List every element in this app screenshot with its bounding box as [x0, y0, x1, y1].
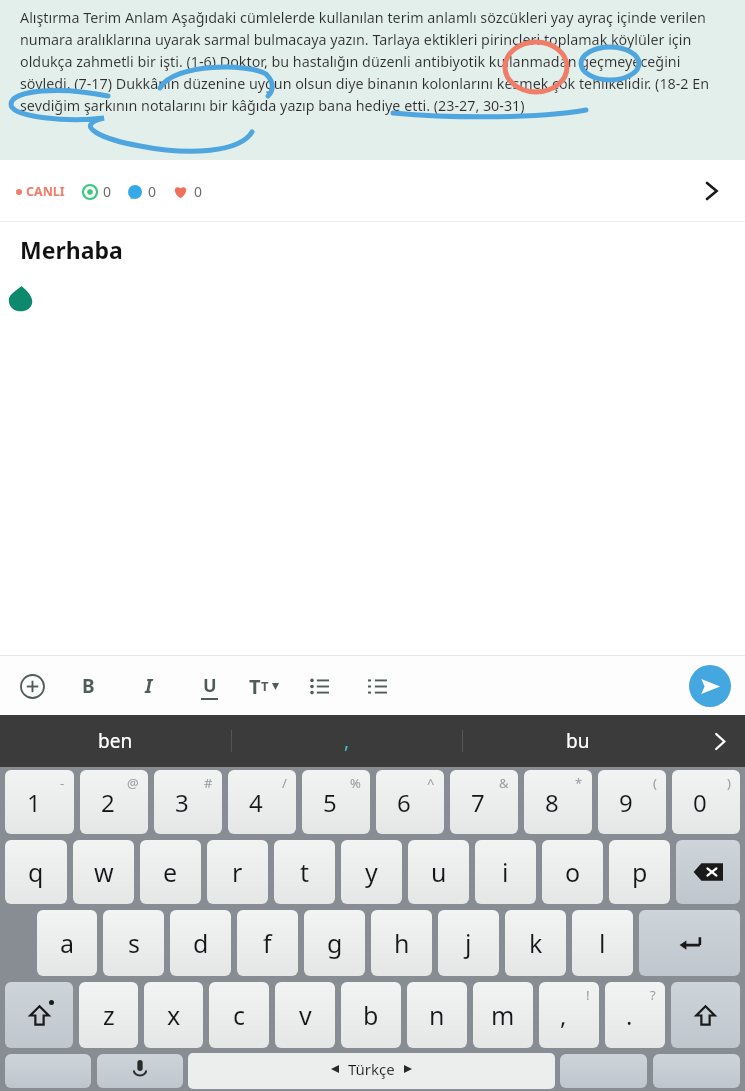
button[interactable]: 5	[302, 770, 370, 834]
button[interactable]: CANLI	[0, 160, 745, 222]
button[interactable]: Send	[689, 665, 731, 707]
button[interactable]: Clipboard	[653, 1054, 740, 1088]
button[interactable]: Add	[14, 668, 50, 704]
staticText: e	[163, 855, 178, 889]
staticText: -	[60, 774, 65, 792]
staticText: d	[193, 926, 209, 960]
button[interactable]: r	[207, 840, 268, 904]
button[interactable]: d	[170, 910, 231, 976]
button[interactable]: h	[371, 910, 432, 976]
button[interactable]: j	[438, 910, 499, 976]
button[interactable]: I	[131, 668, 167, 704]
staticText: m	[491, 998, 515, 1032]
staticText: !	[586, 986, 590, 1004]
button[interactable]: 9	[598, 770, 666, 834]
button[interactable]: Voice input	[97, 1054, 183, 1088]
button[interactable]: 6	[376, 770, 444, 834]
staticText: 0	[194, 182, 203, 201]
other: Details	[703, 183, 719, 199]
button[interactable]: 2	[80, 770, 148, 834]
button[interactable]: 4	[228, 770, 296, 834]
button[interactable]: U	[191, 668, 227, 704]
staticText: *	[575, 774, 583, 792]
staticText: i	[502, 855, 509, 889]
button[interactable]: l	[572, 910, 633, 976]
button[interactable]: s	[103, 910, 164, 976]
staticText: 1	[27, 786, 41, 819]
button[interactable]: ben	[0, 715, 231, 767]
staticText: 0	[103, 182, 112, 201]
button[interactable]: Bulleted list	[301, 668, 337, 704]
button[interactable]: Enter	[639, 910, 740, 976]
staticText: o	[565, 855, 581, 889]
button[interactable]: w	[73, 840, 134, 904]
button[interactable]: 3	[154, 770, 222, 834]
button[interactable]: y	[341, 840, 402, 904]
staticText: y	[365, 855, 378, 889]
button[interactable]: B	[70, 668, 106, 704]
button[interactable]: ,	[232, 715, 462, 767]
button[interactable]: More suggestions	[693, 715, 745, 767]
button[interactable]: k	[505, 910, 566, 976]
staticText: q	[28, 855, 44, 889]
button[interactable]: bu	[463, 715, 693, 767]
button[interactable]: a	[37, 910, 97, 976]
staticText: bu	[566, 728, 590, 754]
staticText: p	[632, 855, 648, 889]
button[interactable]: i	[475, 840, 536, 904]
staticText: j	[465, 926, 472, 960]
staticText: 5	[323, 786, 337, 819]
button[interactable]: x	[144, 982, 203, 1048]
button[interactable]: b	[341, 982, 401, 1048]
staticText: &	[499, 774, 509, 792]
button[interactable]: Shift	[5, 982, 73, 1048]
staticText: l	[599, 926, 606, 960]
button[interactable]: v	[275, 982, 335, 1048]
staticText: 2	[101, 786, 115, 819]
button[interactable]: m	[473, 982, 533, 1048]
staticText: Merhaba	[20, 234, 123, 265]
button[interactable]: Text size	[249, 668, 279, 704]
staticText: b	[363, 998, 379, 1032]
button[interactable]: q	[5, 840, 67, 904]
button[interactable]: Backspace	[676, 840, 740, 904]
staticText: s	[128, 926, 140, 960]
button[interactable]: Symbols	[5, 1054, 91, 1088]
staticText: T	[261, 677, 269, 695]
button[interactable]: e	[140, 840, 201, 904]
staticText: h	[394, 926, 410, 960]
staticText: 9	[619, 786, 633, 819]
staticText: v	[299, 998, 312, 1032]
button[interactable]: ,	[539, 982, 599, 1048]
staticText: g	[327, 926, 343, 960]
staticText: I	[145, 673, 153, 699]
button[interactable]: .	[605, 982, 665, 1048]
staticText: Alıştırma Terim Anlam Aşağıdaki cümleler…	[20, 8, 729, 116]
button[interactable]: z	[79, 982, 138, 1048]
staticText: u	[431, 855, 447, 889]
button[interactable]: 1	[5, 770, 74, 834]
button[interactable]: g	[304, 910, 365, 976]
staticText: B	[82, 673, 95, 699]
button[interactable]: u	[408, 840, 469, 904]
button[interactable]: 7	[450, 770, 518, 834]
button[interactable]: p	[609, 840, 670, 904]
button[interactable]: 8	[524, 770, 592, 834]
button[interactable]: t	[274, 840, 335, 904]
button[interactable]: o	[542, 840, 603, 904]
staticText: ^	[427, 774, 435, 792]
button[interactable]: Shift	[671, 982, 740, 1048]
staticText: (	[653, 774, 657, 792]
staticText: 7	[471, 786, 485, 819]
staticText: /	[282, 774, 287, 792]
button[interactable]: Numbered list	[359, 668, 395, 704]
button[interactable]: c	[209, 982, 269, 1048]
staticText: CANLI	[26, 183, 65, 200]
staticText: a	[60, 926, 75, 960]
button[interactable]: Türkçe	[188, 1053, 555, 1089]
staticText: ?	[650, 986, 656, 1004]
button[interactable]: n	[407, 982, 467, 1048]
button[interactable]: f	[237, 910, 298, 976]
button[interactable]: 0	[672, 770, 740, 834]
button[interactable]: Emoji	[560, 1054, 647, 1088]
